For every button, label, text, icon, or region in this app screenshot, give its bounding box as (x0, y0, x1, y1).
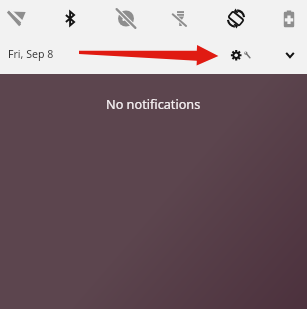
staticText: Fri, Sep 8 (8, 47, 54, 61)
button[interactable]: Bluetooth (51, 2, 91, 36)
button[interactable]: Do not disturb (106, 2, 146, 36)
staticText: No notifications (106, 95, 201, 112)
button[interactable]: Settings (224, 43, 256, 69)
button[interactable]: Battery saver (269, 2, 307, 36)
button[interactable]: Expand quick settings (277, 43, 303, 69)
button[interactable]: Auto rotate (216, 2, 256, 36)
button[interactable]: Flashlight (161, 2, 201, 36)
button[interactable]: Wi-Fi off (0, 2, 38, 36)
